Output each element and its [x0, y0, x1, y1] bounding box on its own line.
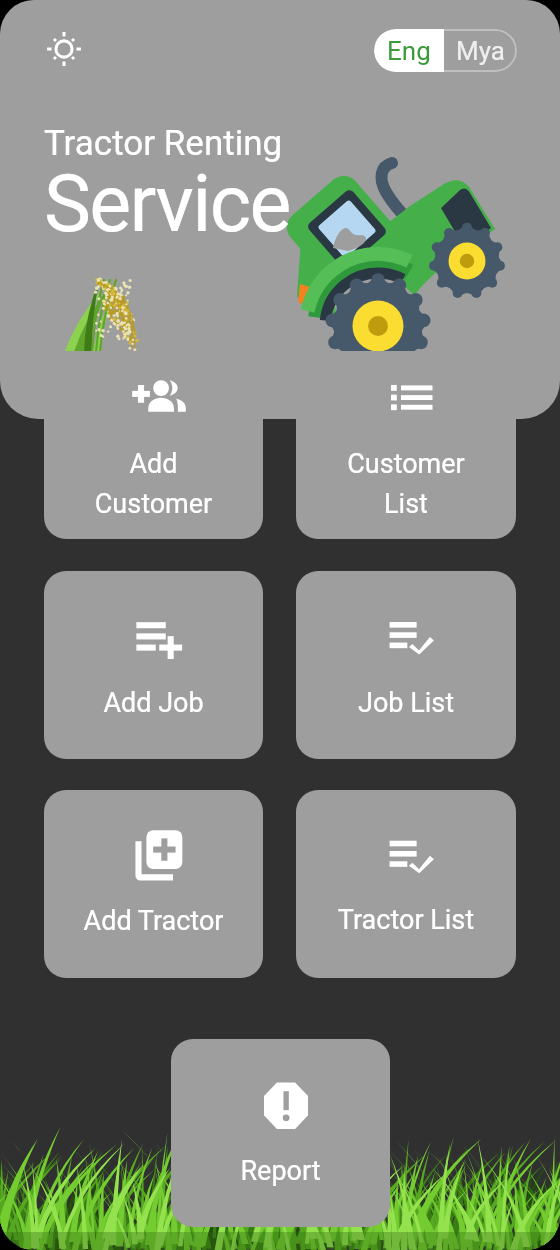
staticText: Job List [296, 687, 516, 719]
button[interactable]: Job List [296, 571, 516, 759]
staticText: Add Customer [44, 448, 263, 519]
button[interactable]: Report [171, 1039, 390, 1227]
button[interactable]: Toggle light mode [34, 19, 94, 79]
staticText: Add Job [44, 687, 263, 719]
staticText: Add Tractor [44, 905, 263, 937]
staticText: Service [44, 158, 290, 251]
button[interactable]: Add Tractor [44, 790, 263, 978]
button[interactable]: Eng [374, 29, 444, 72]
button[interactable]: Add Job [44, 571, 263, 759]
staticText: Tractor Renting [44, 123, 283, 164]
button[interactable]: Add Customer [44, 351, 263, 539]
button[interactable]: Mya [444, 29, 517, 72]
staticText: Customer List [296, 448, 516, 519]
staticText: Mya [456, 36, 505, 66]
button[interactable]: Customer List [296, 351, 516, 539]
staticText: Tractor List [296, 904, 516, 936]
staticText: Report [171, 1155, 390, 1187]
staticText: Eng [387, 36, 431, 66]
button[interactable]: Tractor List [296, 790, 516, 978]
